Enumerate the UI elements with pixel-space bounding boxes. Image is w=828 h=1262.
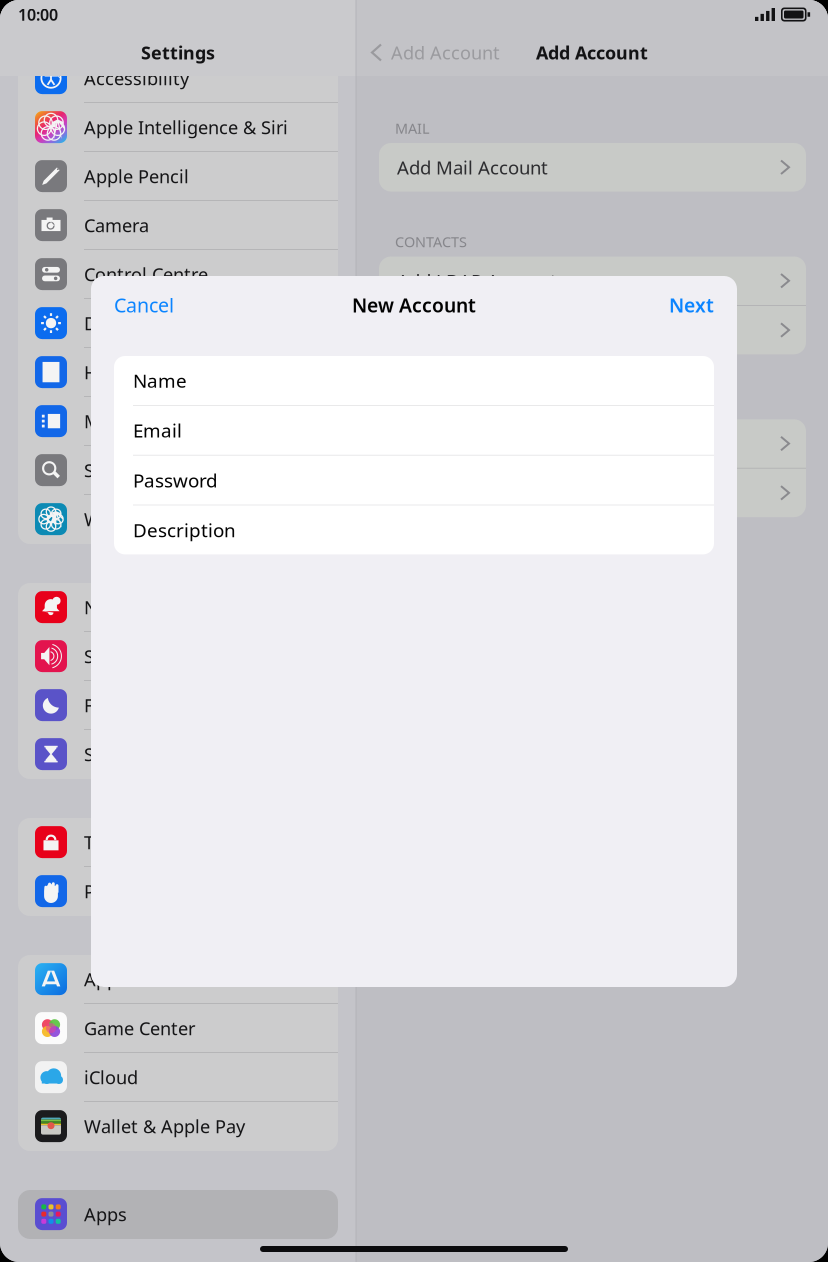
staticText: Home Screen & App Library [84,360,318,384]
staticText: Cancel [114,292,174,318]
button[interactable]: Sounds [18,632,338,681]
staticText: Apple Pencil [84,164,189,188]
staticText: Password [133,467,218,493]
button[interactable]: Wallet & Apple Pay [18,1102,338,1151]
staticText: Email [133,417,182,443]
button[interactable]: Touch ID & Passcode [18,818,338,867]
staticText: Accessibility [84,66,189,90]
staticText: Touch ID & Passcode [84,830,262,854]
staticText: Control Centre [84,262,208,286]
button[interactable]: Apps [18,1190,338,1239]
staticText: Sounds [84,644,147,668]
staticText: Apps [84,1202,127,1226]
button[interactable]: Add CardDAV Account [379,306,806,354]
button[interactable]: Next [669,292,714,318]
staticText: Multitasking & Gestures [84,409,290,433]
staticText: Add Mail Account [397,155,548,180]
staticText: Add CalDAV Account [397,431,573,456]
staticText: App Store [84,967,168,991]
staticText: Notifications [84,595,194,619]
button[interactable]: App Store [18,955,338,1004]
staticText: 10:00 [18,4,58,25]
button[interactable]: Search [18,446,338,495]
button[interactable]: Camera [18,201,338,250]
button[interactable]: Apple Pencil [18,152,338,201]
button[interactable]: Multitasking & Gestures [18,397,338,446]
button[interactable]: Add Mail Account [379,143,806,191]
button[interactable]: Screen Time [18,730,338,779]
staticText: CALENDARS [395,395,476,414]
staticText: Screen Time [84,742,188,766]
button[interactable]: Control Centre [18,250,338,299]
button[interactable]: Home Screen & App Library [18,348,338,397]
staticText: CONTACTS [395,232,467,251]
button[interactable]: Display & Brightness [18,299,338,348]
button[interactable]: Privacy & Security [18,867,338,916]
staticText: MAIL [395,118,430,138]
staticText: iCloud [84,1065,138,1089]
staticText: Next [669,292,714,318]
button[interactable]: Accessibility [18,54,338,103]
button[interactable]: Add Account [356,40,500,65]
staticText: Add Account [391,40,500,65]
button[interactable]: Apple Intelligence & Siri [18,103,338,152]
staticText: Privacy & Security [84,879,235,903]
button[interactable]: Wallpaper [18,495,338,544]
staticText: Apple Intelligence & Siri [84,115,288,139]
staticText: Name [133,368,187,393]
staticText: Game Center [84,1016,195,1040]
button[interactable]: Focus [18,681,338,730]
button[interactable]: iCloud [18,1053,338,1102]
button[interactable]: Cancel [114,292,174,318]
staticText: Add LDAP Account [397,268,557,293]
staticText: Focus [84,693,133,717]
button[interactable]: Add CalDAV Account [379,419,806,469]
button[interactable]: Password [114,456,714,505]
button[interactable]: Name [114,356,714,405]
staticText: Display & Brightness [84,311,261,335]
staticText: New Account [352,292,476,318]
staticText: Settings [141,40,215,65]
staticText: Add Account [536,40,648,65]
button[interactable]: Add Subscribed Calendar [379,469,806,517]
staticText: Wallet & Apple Pay [84,1114,245,1138]
button[interactable]: Notifications [18,583,338,632]
button[interactable]: Email [114,406,714,455]
button[interactable]: Game Center [18,1004,338,1053]
staticText: Wallpaper [84,507,170,531]
button[interactable]: Add LDAP Account [379,256,806,306]
button[interactable]: Description [114,505,714,554]
staticText: Camera [84,213,149,237]
staticText: Description [133,517,236,543]
staticText: Search [84,458,141,482]
